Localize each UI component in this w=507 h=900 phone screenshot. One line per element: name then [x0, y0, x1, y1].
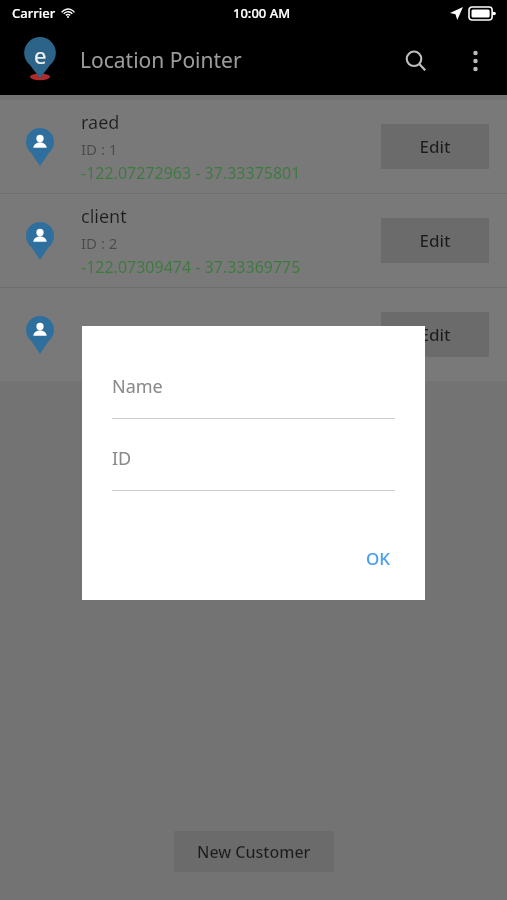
staticText: client: [81, 204, 127, 229]
staticText: Edit: [419, 229, 451, 252]
staticText: New Customer: [197, 841, 311, 863]
button[interactable]: Search: [392, 37, 440, 85]
button[interactable]: Edit: [381, 218, 489, 263]
button[interactable]: OK: [354, 539, 403, 578]
staticText: ID : 1: [81, 139, 118, 159]
button[interactable]: client: [0, 194, 507, 287]
button[interactable]: Client A: [0, 288, 507, 381]
staticText: -122.07309474 - 37.33369775: [81, 256, 301, 278]
button[interactable]: Name: [112, 374, 395, 419]
staticText: ID : 2: [81, 233, 118, 253]
staticText: Carrier: [12, 4, 56, 22]
staticText: raed: [81, 110, 120, 135]
button[interactable]: ID: [112, 446, 395, 491]
staticText: 10:00 AM: [233, 4, 291, 22]
staticText: Client A: [81, 322, 146, 347]
button[interactable]: Edit: [381, 312, 489, 357]
staticText: Name: [112, 374, 163, 399]
staticText: Location Pointer: [80, 46, 242, 75]
button[interactable]: New Customer: [174, 831, 334, 872]
staticText: Edit: [419, 323, 451, 346]
staticText: e: [34, 40, 47, 70]
staticText: ID: [112, 446, 132, 471]
button[interactable]: Edit: [381, 124, 489, 169]
staticText: OK: [366, 547, 391, 570]
staticText: -122.07272963 - 37.33375801: [81, 162, 301, 184]
button[interactable]: raed: [0, 100, 507, 193]
staticText: Edit: [419, 135, 451, 158]
button[interactable]: More options: [451, 37, 499, 85]
